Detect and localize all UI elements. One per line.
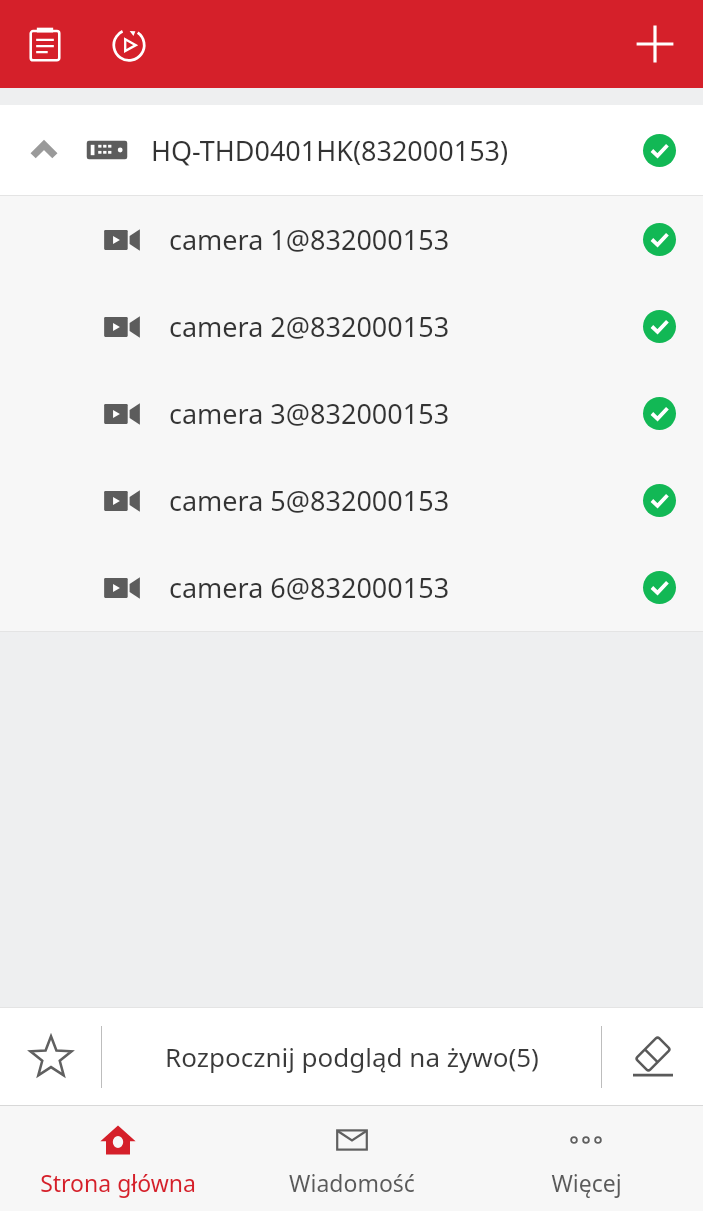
staticText: Wiadomość xyxy=(289,1167,415,1198)
staticText: camera 3@832000153 xyxy=(169,395,643,432)
button[interactable]: camera 5@832000153 xyxy=(0,457,703,544)
staticText: Więcej xyxy=(551,1167,622,1198)
button[interactable]: Playback xyxy=(98,13,160,75)
button[interactable]: camera 1@832000153 xyxy=(0,196,703,283)
button[interactable]: Device list xyxy=(14,13,76,75)
button[interactable]: camera 6@832000153 xyxy=(0,544,703,631)
staticText: HQ-THD0401HK(832000153) xyxy=(151,132,643,169)
staticText: Strona główna xyxy=(40,1167,196,1198)
button[interactable]: Clear xyxy=(602,1008,703,1105)
staticText: camera 5@832000153 xyxy=(169,482,643,519)
button[interactable]: camera 3@832000153 xyxy=(0,370,703,457)
button[interactable]: camera 2@832000153 xyxy=(0,283,703,370)
button[interactable]: Favorites xyxy=(0,1008,101,1105)
staticText: camera 2@832000153 xyxy=(169,308,643,345)
staticText: camera 6@832000153 xyxy=(169,569,643,606)
button[interactable]: Wiadomość xyxy=(235,1106,469,1211)
button[interactable]: HQ-THD0401HK(832000153) xyxy=(0,105,703,195)
staticText: camera 1@832000153 xyxy=(169,221,643,258)
staticText: Rozpocznij podgląd na żywo(5) xyxy=(165,1039,539,1074)
button[interactable]: Strona główna xyxy=(0,1106,235,1211)
button[interactable]: Rozpocznij podgląd na żywo(5) xyxy=(102,1008,601,1105)
button[interactable]: Add device xyxy=(623,12,687,76)
button[interactable]: Więcej xyxy=(469,1106,703,1211)
